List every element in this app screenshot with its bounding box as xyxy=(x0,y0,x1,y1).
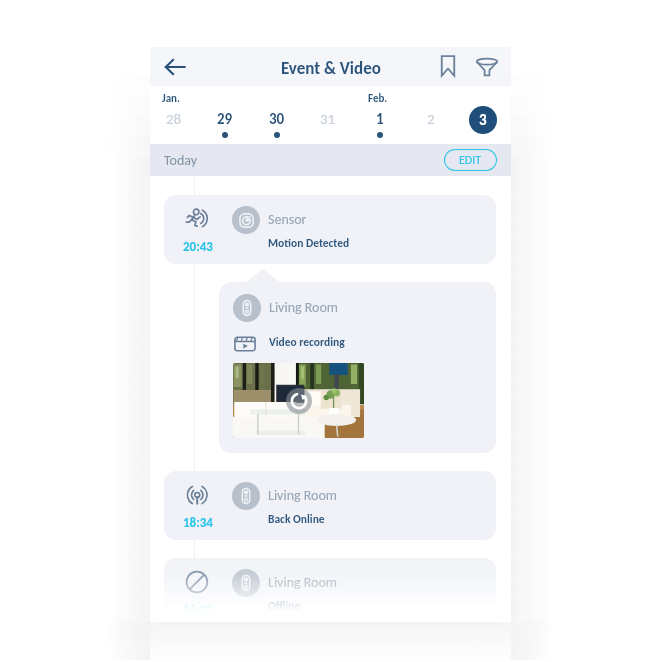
button[interactable]: Back xyxy=(157,49,193,85)
staticText: 16:10 xyxy=(183,602,213,618)
staticText: 31 xyxy=(320,110,336,128)
button[interactable]: 16:10 xyxy=(164,558,496,622)
button[interactable]: 20:43 xyxy=(164,195,496,264)
staticText: Today xyxy=(164,152,198,169)
staticText: Event & Video xyxy=(281,58,381,79)
staticText: EDIT xyxy=(459,153,482,168)
button[interactable]: Living Room xyxy=(219,282,496,453)
staticText: 2 xyxy=(427,110,435,128)
button[interactable]: Feb. xyxy=(354,86,405,144)
staticText: Living Room xyxy=(269,299,339,316)
staticText: 1 xyxy=(376,110,384,128)
staticText: Living Room xyxy=(268,487,338,504)
button[interactable]: 3 xyxy=(469,106,497,134)
button[interactable]: 30 xyxy=(251,86,302,144)
staticText: 30 xyxy=(269,110,285,128)
button[interactable]: 31 xyxy=(302,86,353,144)
staticText: 3 xyxy=(479,111,487,129)
staticText: Feb. xyxy=(368,92,388,105)
staticText: Motion Detected xyxy=(268,236,350,250)
staticText: 18:34 xyxy=(183,515,213,531)
staticText: Living Room xyxy=(268,574,338,591)
button[interactable]: 3 xyxy=(457,86,508,144)
button[interactable]: Jan. xyxy=(148,86,199,144)
staticText: Back Online xyxy=(268,512,325,526)
staticText: Jan. xyxy=(162,92,180,105)
button[interactable]: 29 xyxy=(199,86,250,144)
button[interactable]: 18:34 xyxy=(164,471,496,540)
button[interactable]: 2 xyxy=(405,86,456,144)
button[interactable]: EDIT xyxy=(444,149,497,171)
button[interactable]: Filter xyxy=(469,49,505,85)
staticText: 20:43 xyxy=(183,239,213,255)
staticText: Offline xyxy=(268,599,301,613)
staticText: Sensor xyxy=(268,211,307,228)
staticText: 29 xyxy=(217,110,233,128)
staticText: Video recording xyxy=(269,335,345,349)
staticText: 28 xyxy=(166,110,182,128)
button[interactable]: Bookmark xyxy=(433,49,469,85)
